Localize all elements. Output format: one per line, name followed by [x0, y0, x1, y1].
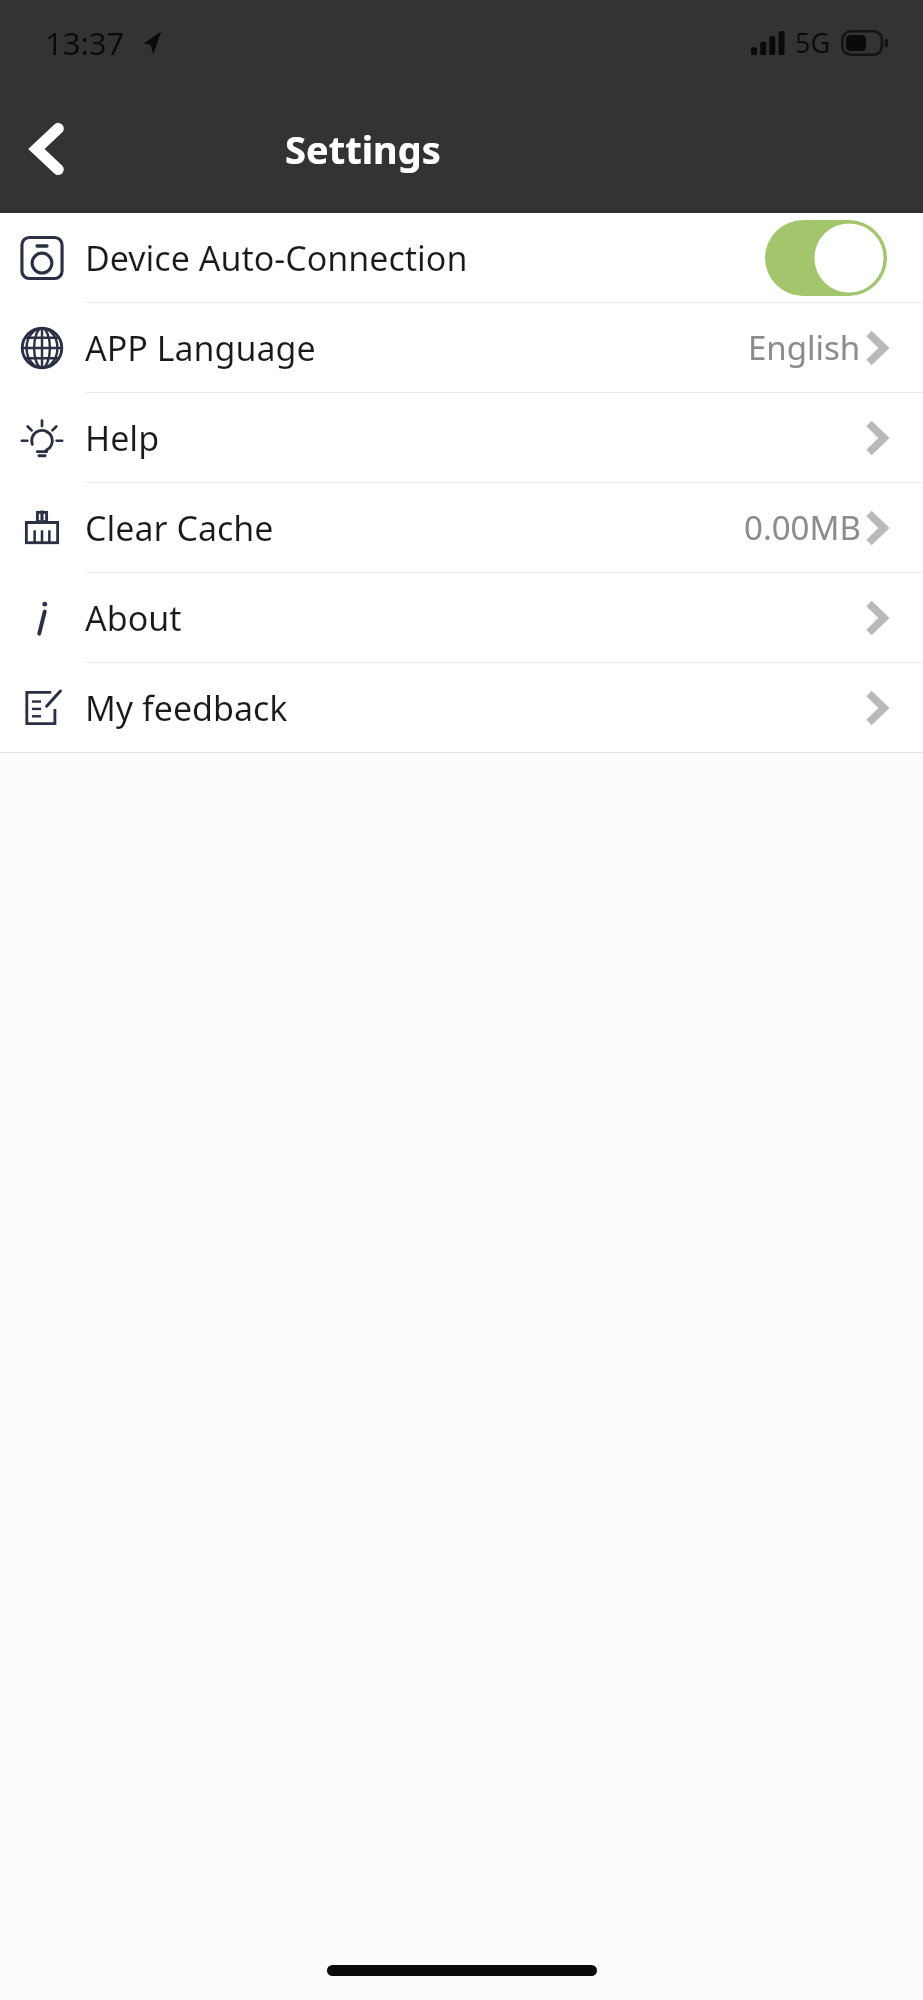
- staticText: Device Auto-Connection: [85, 235, 468, 281]
- staticText: About: [85, 595, 182, 641]
- staticText: Help: [85, 415, 160, 461]
- staticText: 5G: [795, 24, 831, 61]
- button[interactable]: Clear Cache: [0, 483, 923, 572]
- button[interactable]: My feedback: [0, 663, 923, 752]
- staticText: APP Language: [85, 325, 316, 371]
- staticText: 0.00MB: [744, 505, 861, 550]
- staticText: English: [748, 325, 861, 370]
- staticText: Clear Cache: [85, 505, 274, 551]
- button[interactable]: Device Auto-Connection: [0, 213, 923, 302]
- button[interactable]: Back: [0, 99, 96, 199]
- button[interactable]: Device Auto-Connection toggle: [765, 220, 887, 296]
- staticText: 13:37: [45, 22, 125, 64]
- staticText: Settings: [285, 123, 441, 175]
- button[interactable]: Help: [0, 393, 923, 482]
- staticText: My feedback: [85, 685, 288, 731]
- button[interactable]: APP Language: [0, 303, 923, 392]
- button[interactable]: About: [0, 573, 923, 662]
